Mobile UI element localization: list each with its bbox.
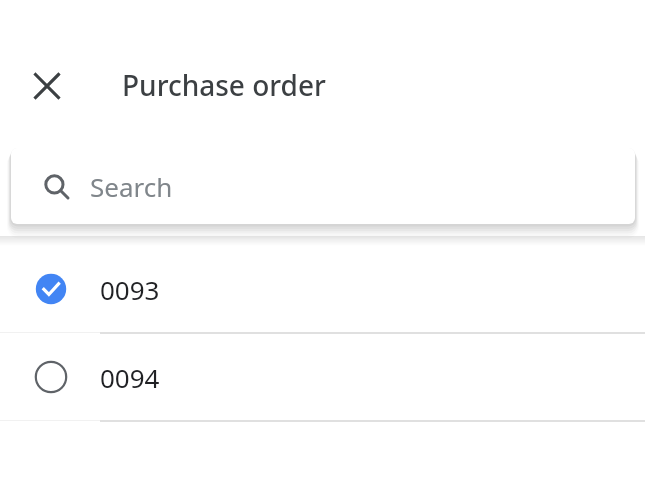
button[interactable]: 0094: [0, 334, 645, 420]
staticText: 0093: [100, 272, 160, 307]
staticText: Search: [90, 169, 173, 204]
staticText: Purchase order: [122, 66, 326, 104]
staticText: 0094: [100, 360, 160, 395]
button[interactable]: Search: [11, 148, 635, 224]
button[interactable]: Close: [22, 61, 71, 110]
other: Search: [44, 174, 70, 200]
button[interactable]: 0093: [0, 246, 645, 332]
